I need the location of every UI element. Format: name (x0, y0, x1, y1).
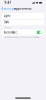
staticText: AUTOMATIC (4, 27, 12, 29)
button[interactable]: Light (2, 13, 44, 19)
staticText: Dark (4, 20, 9, 24)
button[interactable]: Settings (0, 6, 16, 11)
button[interactable]: Automatic (2, 29, 44, 35)
staticText: Automatic (4, 31, 17, 34)
staticText: Light (4, 14, 11, 18)
staticText: Appearance (14, 7, 32, 10)
staticText: 9:41 (4, 1, 11, 4)
staticText: Settings (3, 7, 14, 10)
button[interactable]: Dark (2, 19, 44, 25)
staticText: Automatically adjust appearance based on… (4, 36, 40, 38)
